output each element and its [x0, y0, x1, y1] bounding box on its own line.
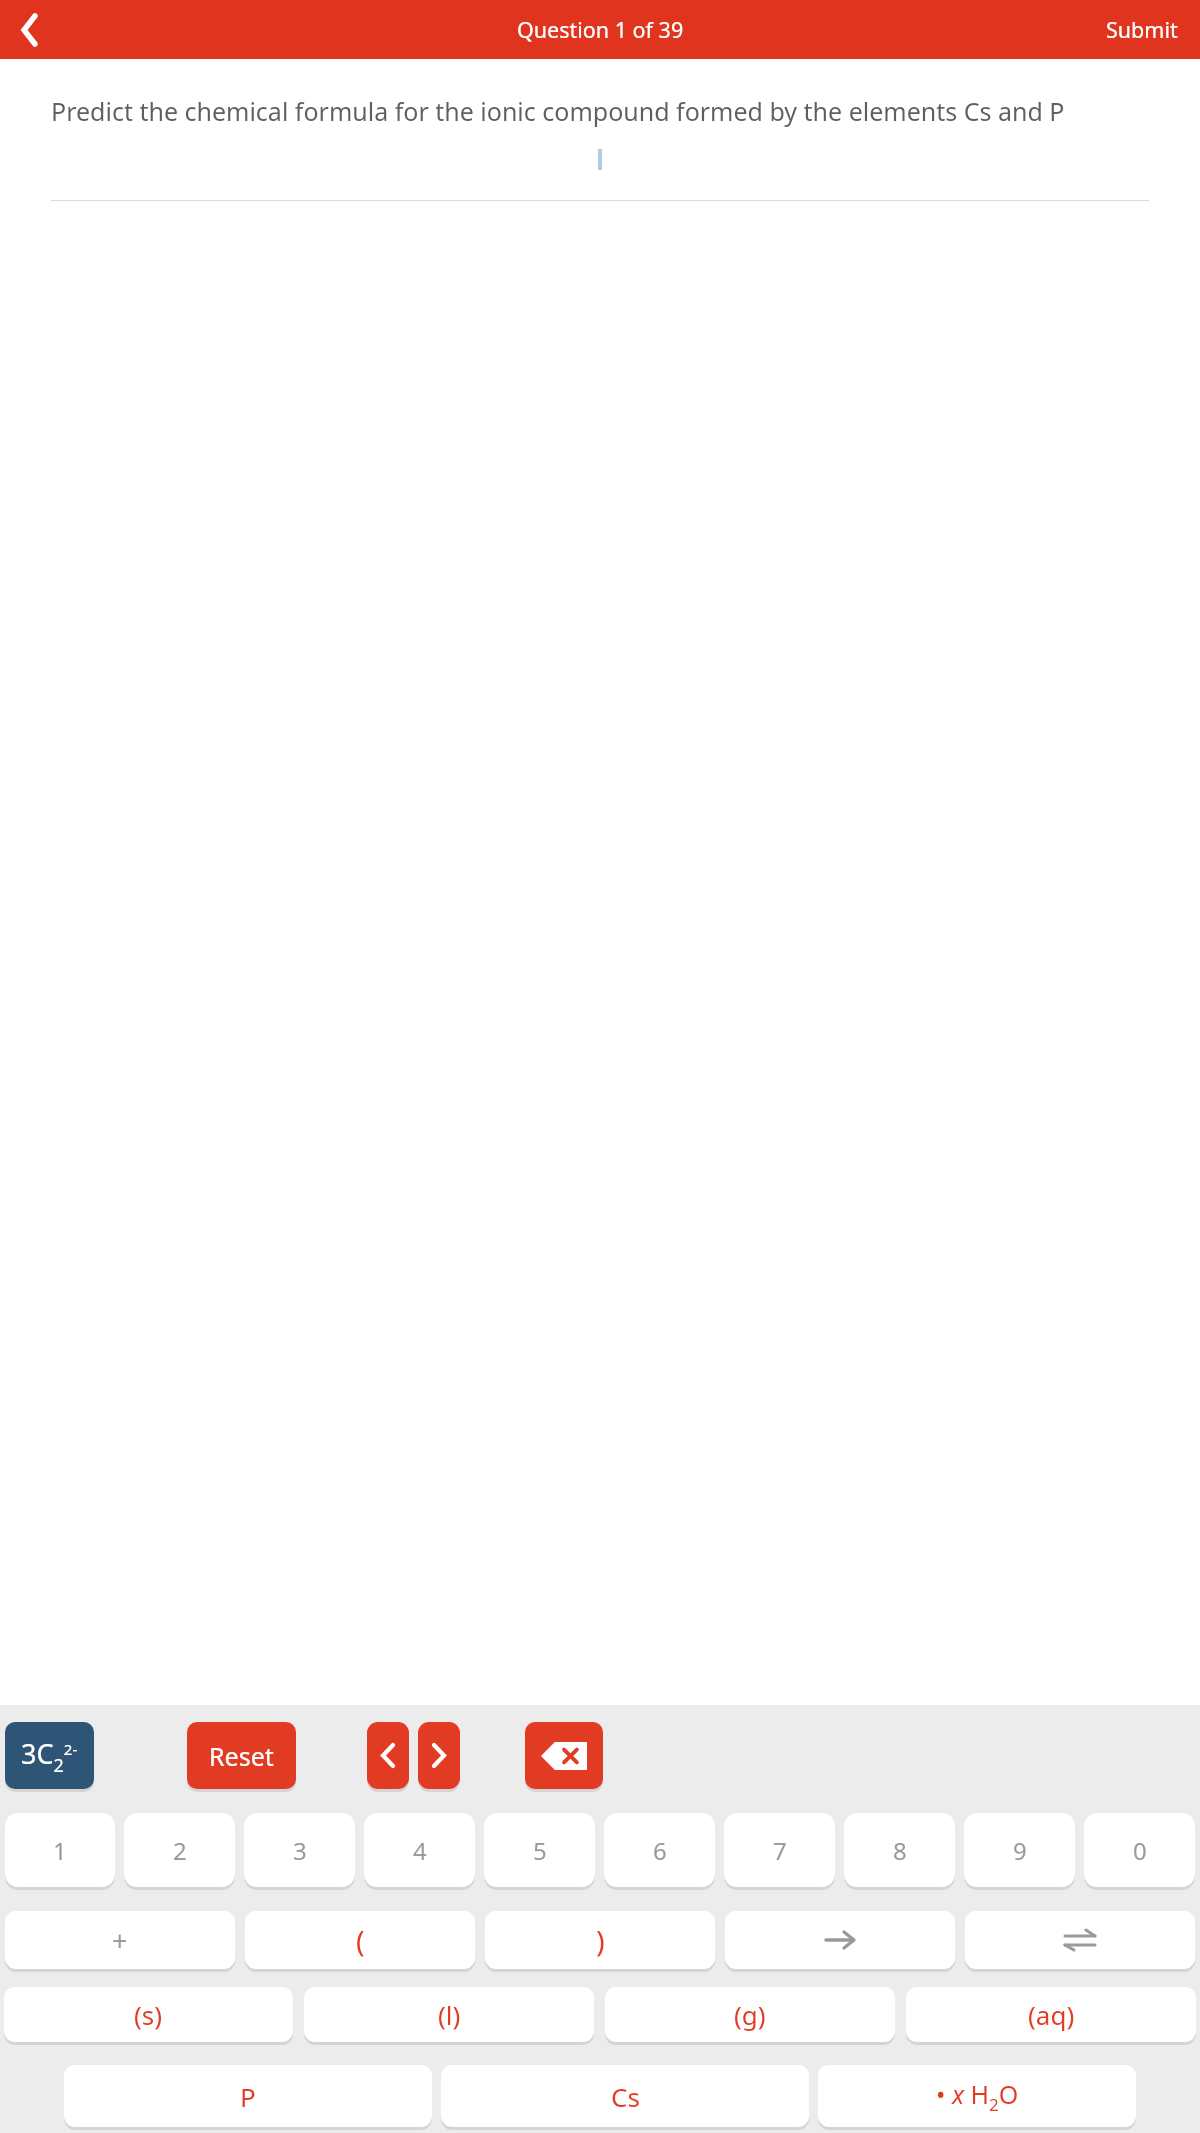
staticText: 4: [413, 1834, 427, 1867]
button[interactable]: Dot x H2O hydrate: [818, 2065, 1136, 2127]
staticText: 5: [533, 1834, 547, 1867]
staticText: 8: [893, 1834, 907, 1867]
button[interactable]: 8: [844, 1813, 955, 1887]
staticText: 7: [773, 1834, 787, 1867]
staticText: 2: [173, 1834, 187, 1867]
button[interactable]: 2: [124, 1813, 235, 1887]
button[interactable]: 9: [964, 1813, 1075, 1887]
staticText: (s): [134, 1997, 163, 2032]
button[interactable]: Cursor left: [367, 1722, 409, 1789]
button[interactable]: 6: [604, 1813, 715, 1887]
staticText: Cs: [611, 2079, 640, 2114]
staticText: Predict the chemical formula for the ion…: [51, 94, 1065, 128]
button[interactable]: 5: [484, 1813, 595, 1887]
button[interactable]: (aq): [906, 1987, 1196, 2042]
button[interactable]: +: [5, 1911, 235, 1969]
staticText: +: [112, 1922, 128, 1959]
staticText: 3C22-: [21, 1735, 78, 1777]
staticText: (g): [734, 1997, 766, 2032]
button[interactable]: (l): [304, 1987, 594, 2042]
button[interactable]: (s): [4, 1987, 293, 2042]
button[interactable]: 3: [244, 1813, 355, 1887]
button[interactable]: 1: [5, 1813, 115, 1887]
staticText: 9: [1013, 1834, 1027, 1867]
button[interactable]: 7: [724, 1813, 835, 1887]
staticText: (l): [438, 1997, 461, 2032]
button[interactable]: Current formula 3C2 2 minus: [5, 1722, 94, 1789]
staticText: Question 1 of 39: [517, 15, 684, 44]
staticText: Reset: [209, 1739, 274, 1773]
button[interactable]: Equilibrium arrows: [965, 1911, 1195, 1969]
staticText: • x H2O: [936, 2077, 1019, 2116]
button[interactable]: Backspace: [525, 1722, 603, 1789]
staticText: 0: [1133, 1834, 1147, 1867]
staticText: 6: [653, 1834, 667, 1867]
button[interactable]: Back: [0, 0, 58, 59]
staticText: (: [356, 1921, 365, 1960]
button[interactable]: Yields arrow: [725, 1911, 955, 1969]
staticText: P: [240, 2079, 256, 2114]
staticText: (aq): [1028, 1997, 1075, 2032]
staticText: ): [596, 1921, 605, 1960]
button[interactable]: Submit: [1084, 0, 1200, 59]
button[interactable]: 0: [1084, 1813, 1195, 1887]
button[interactable]: Cursor right: [418, 1722, 460, 1789]
button[interactable]: Reset: [187, 1722, 296, 1789]
staticText: Submit: [1106, 15, 1178, 44]
button[interactable]: P: [64, 2065, 432, 2127]
button[interactable]: 4: [364, 1813, 475, 1887]
button[interactable]: Cs: [441, 2065, 809, 2127]
button[interactable]: ): [485, 1911, 715, 1969]
staticText: 3: [293, 1834, 307, 1867]
staticText: 1: [53, 1834, 67, 1867]
button[interactable]: (: [245, 1911, 475, 1969]
button[interactable]: (g): [605, 1987, 895, 2042]
